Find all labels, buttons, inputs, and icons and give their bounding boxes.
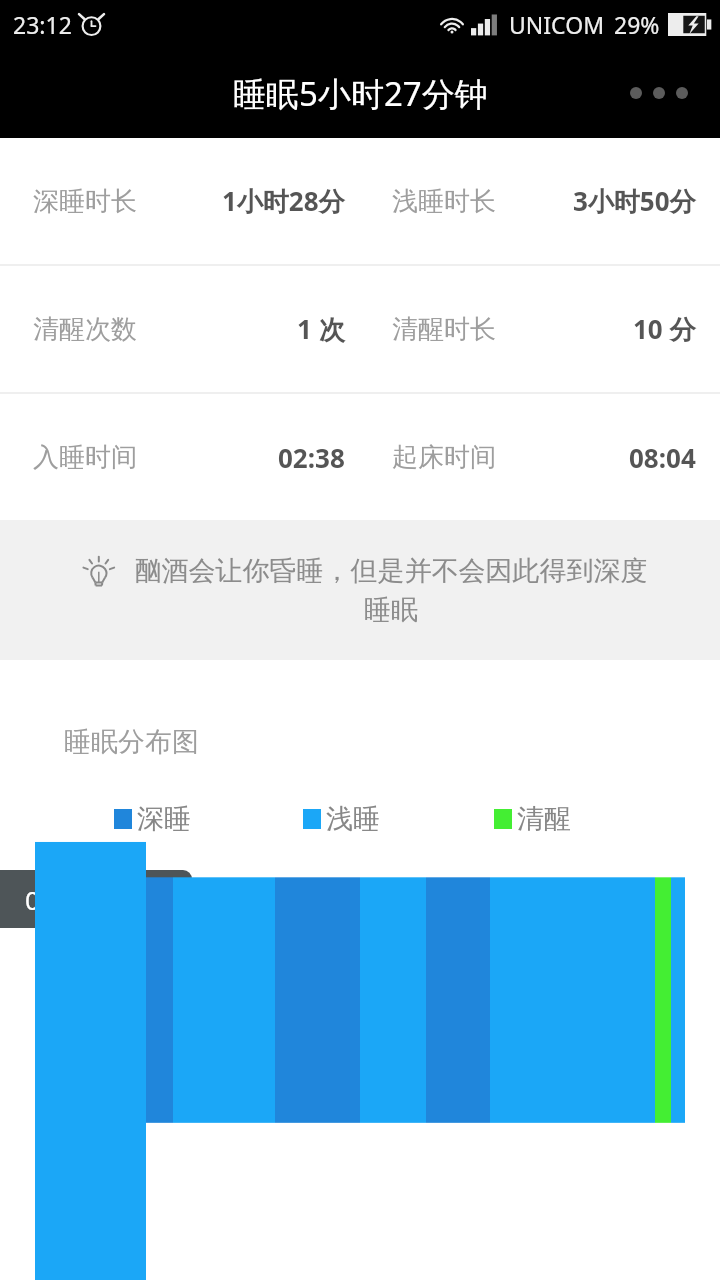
staticText: 入睡时间	[33, 441, 137, 474]
staticText: 23:12	[13, 9, 72, 40]
staticText: 清醒次数	[33, 313, 137, 346]
staticText: 睡眠5小时27分钟	[233, 71, 488, 116]
staticText: 深睡	[137, 802, 191, 836]
button[interactable]: 清醒次数	[0, 266, 720, 392]
staticText: 02:38-03:33	[25, 882, 167, 917]
staticText: 浅睡时长	[392, 185, 496, 218]
button[interactable]: 浅睡	[299, 798, 384, 840]
button[interactable]: More options	[618, 73, 700, 113]
button[interactable]: 深睡时长	[0, 138, 720, 264]
staticText: 02:38	[278, 440, 345, 475]
button[interactable]: 清醒	[490, 798, 575, 840]
staticText: 起床时间	[392, 441, 496, 474]
staticText: 睡眠分布图	[64, 725, 199, 759]
button[interactable]: 深睡	[110, 798, 195, 840]
staticText: 清醒	[517, 802, 571, 836]
staticText: 3小时50分	[573, 183, 696, 219]
staticText: 清醒时长	[392, 313, 496, 346]
staticText: 1小时28分	[222, 183, 345, 219]
staticText: 浅睡	[326, 802, 380, 836]
staticText: 10 分	[633, 311, 696, 347]
staticText: 08:04	[629, 440, 696, 475]
button[interactable]: 入睡时间	[0, 394, 720, 520]
other: Alarm set	[78, 11, 105, 38]
staticText: 29%	[614, 9, 660, 40]
staticText: 深睡时长	[33, 185, 137, 218]
staticText: 酗酒会让你昏睡，但是并不会因此得到深度睡眠	[122, 554, 660, 627]
staticText: 1 次	[297, 311, 345, 347]
staticText: UNICOM	[509, 9, 604, 40]
